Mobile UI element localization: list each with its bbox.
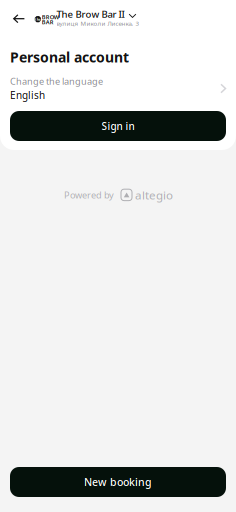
- button[interactable]: Sign in: [10, 111, 226, 141]
- button[interactable]: Change the language: [10, 75, 227, 101]
- staticText: the: [35, 17, 41, 22]
- staticText: The Brow Bar II: [56, 8, 124, 21]
- staticText: New booking: [84, 475, 152, 489]
- staticText: altegio: [135, 187, 173, 203]
- button[interactable]: the: [34, 8, 139, 27]
- staticText: Change the language: [10, 75, 103, 87]
- button[interactable]: New booking: [10, 467, 226, 497]
- staticText: BAR: [42, 18, 54, 26]
- staticText: Personal account: [10, 47, 129, 67]
- staticText: English: [10, 88, 45, 102]
- staticText: Powered by: [64, 189, 114, 201]
- staticText: вулиця Миколи Лисенка, 3: [56, 19, 139, 28]
- staticText: Sign in: [101, 119, 134, 133]
- staticText: BROW: [42, 13, 59, 21]
- button[interactable]: Back: [7, 7, 31, 31]
